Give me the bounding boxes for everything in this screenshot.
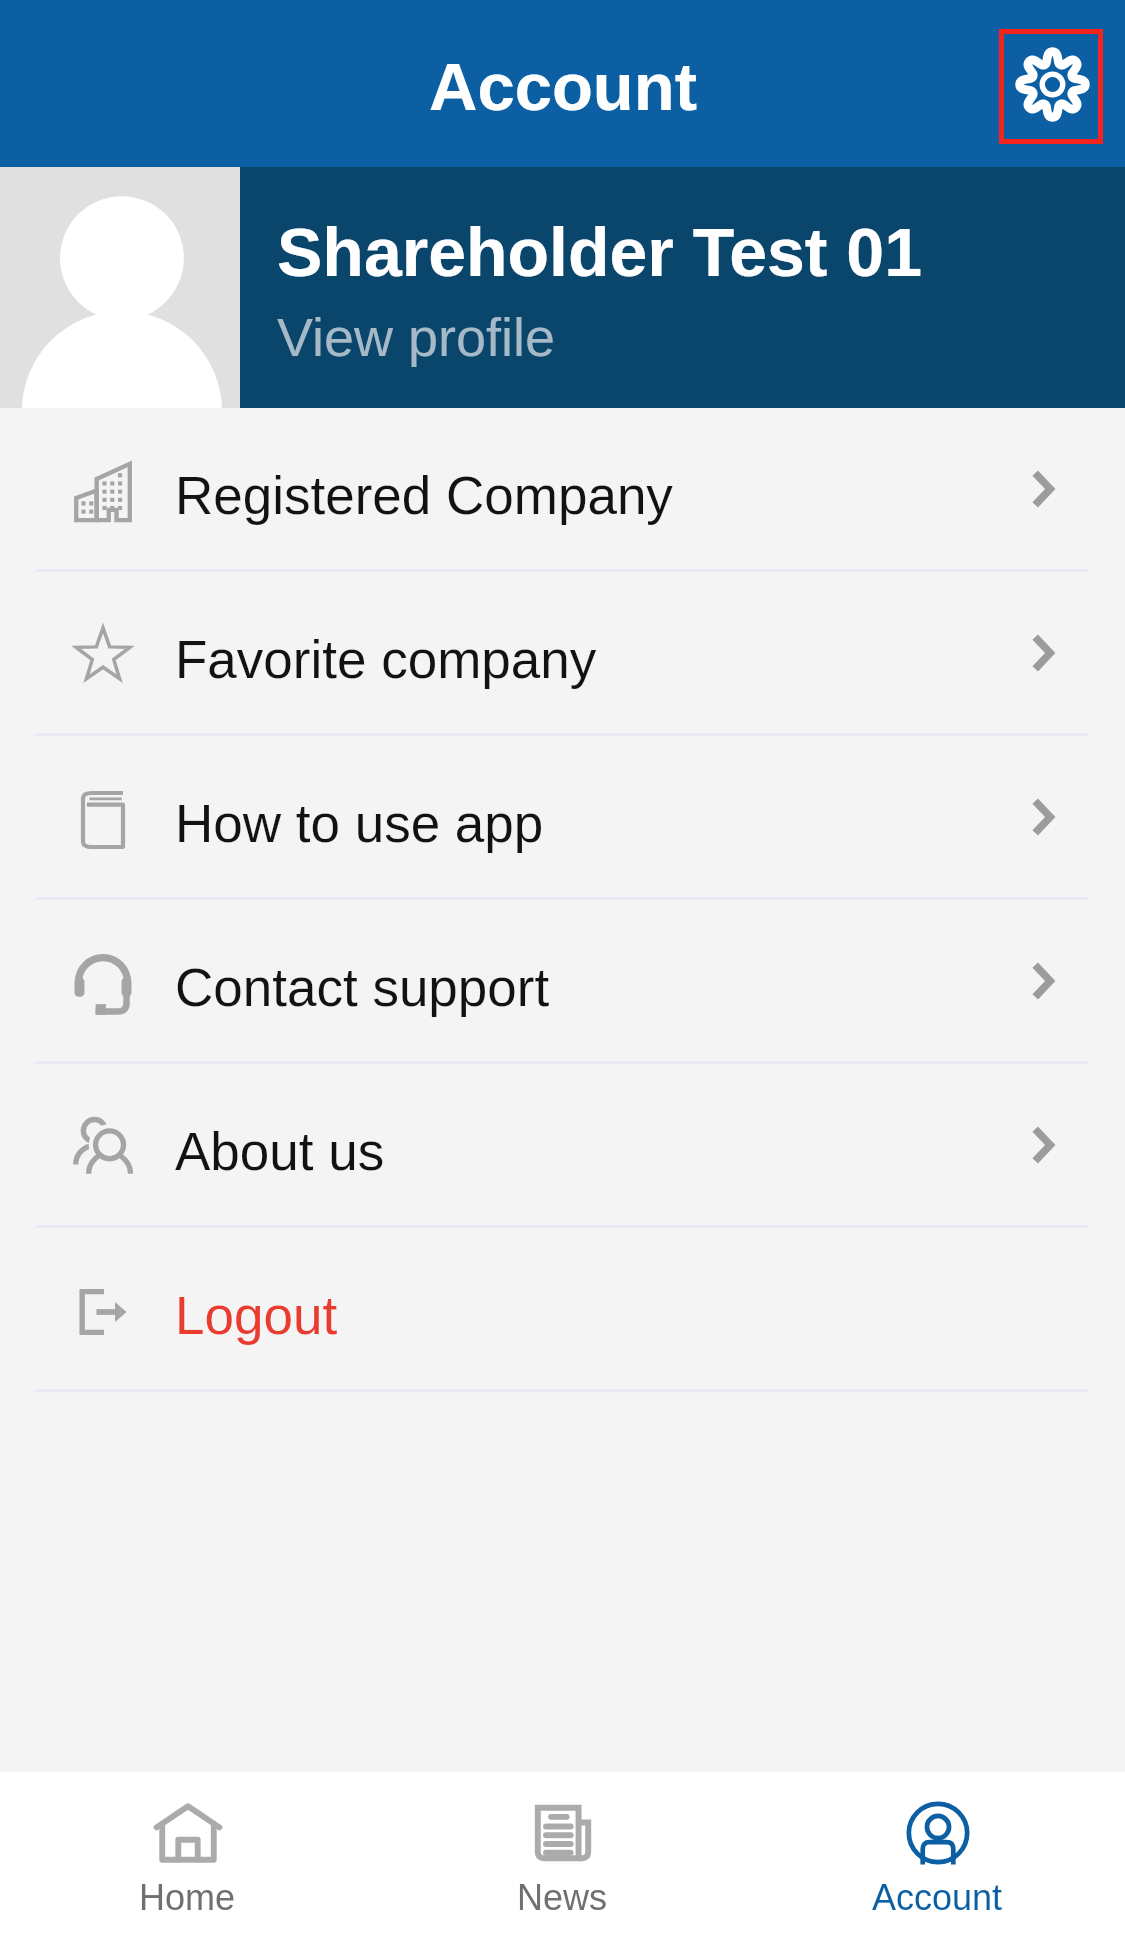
staticText: About us xyxy=(175,1122,385,1181)
staticText: Shareholder Test 01 xyxy=(277,214,922,290)
staticText: View profile xyxy=(277,307,556,367)
button[interactable]: About us xyxy=(0,1064,1125,1225)
staticText: Contact support xyxy=(175,958,550,1017)
button[interactable]: Contact support xyxy=(0,900,1125,1061)
staticText: Account xyxy=(872,1877,1003,1917)
staticText: Registered Company xyxy=(175,466,673,525)
button[interactable]: News xyxy=(375,1772,750,1941)
staticText: Account xyxy=(429,49,697,124)
button[interactable]: Favorite company xyxy=(0,572,1125,733)
staticText: How to use app xyxy=(175,794,544,853)
button[interactable]: Home xyxy=(0,1772,375,1941)
button[interactable]: Logout xyxy=(0,1228,1125,1389)
staticText: Home xyxy=(139,1877,236,1917)
button[interactable]: Account xyxy=(750,1772,1125,1941)
staticText: Logout xyxy=(175,1286,338,1345)
button[interactable]: Settings xyxy=(999,29,1103,144)
button[interactable]: How to use app xyxy=(0,736,1125,897)
staticText: Favorite company xyxy=(175,630,597,689)
staticText: News xyxy=(517,1877,608,1917)
button[interactable]: Registered Company xyxy=(0,408,1125,569)
